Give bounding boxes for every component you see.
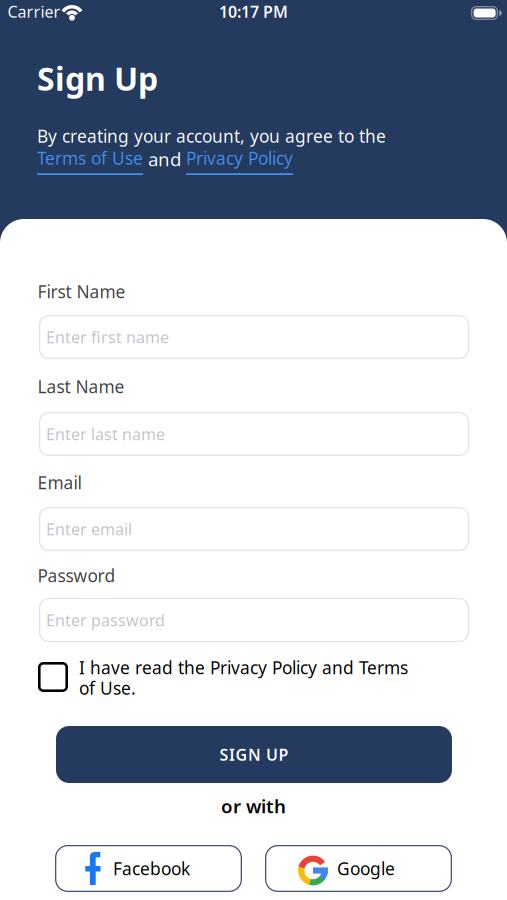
button[interactable]: Google [265, 845, 452, 892]
staticText: Last Name [37, 375, 124, 398]
staticText: First Name [37, 280, 125, 303]
staticText: Enter password [46, 609, 165, 631]
staticText: Carrier [7, 1, 60, 22]
staticText: and [143, 146, 186, 171]
button[interactable]: Privacy Policy [186, 146, 293, 169]
button[interactable]: I have read the Privacy Policy and Terms… [38, 660, 408, 703]
staticText: 10:17 PM [219, 1, 288, 22]
staticText: Enter first name [46, 326, 169, 348]
button[interactable]: Terms of Use [37, 146, 143, 169]
staticText: SIGN UP [219, 744, 288, 765]
staticText: Email [37, 471, 81, 494]
button[interactable]: Facebook [55, 845, 242, 892]
staticText: Enter last name [46, 423, 165, 445]
button[interactable]: Enter email [39, 507, 469, 551]
staticText: By creating your account, you agree to t… [37, 124, 386, 147]
button[interactable]: Enter first name [39, 315, 469, 359]
button[interactable]: SIGN UP [56, 726, 452, 783]
staticText: Google [337, 857, 395, 880]
staticText: Enter email [46, 518, 132, 540]
staticText: Facebook [113, 857, 190, 880]
button[interactable]: Enter last name [39, 412, 469, 456]
button[interactable]: Enter password [39, 598, 469, 642]
staticText: I have read the Privacy Policy and Terms… [79, 656, 408, 699]
staticText: Password [37, 564, 115, 587]
staticText: Sign Up [37, 57, 158, 99]
staticText: Terms of Use [37, 146, 143, 169]
staticText: Privacy Policy [186, 146, 293, 169]
staticText: or with [221, 793, 286, 818]
